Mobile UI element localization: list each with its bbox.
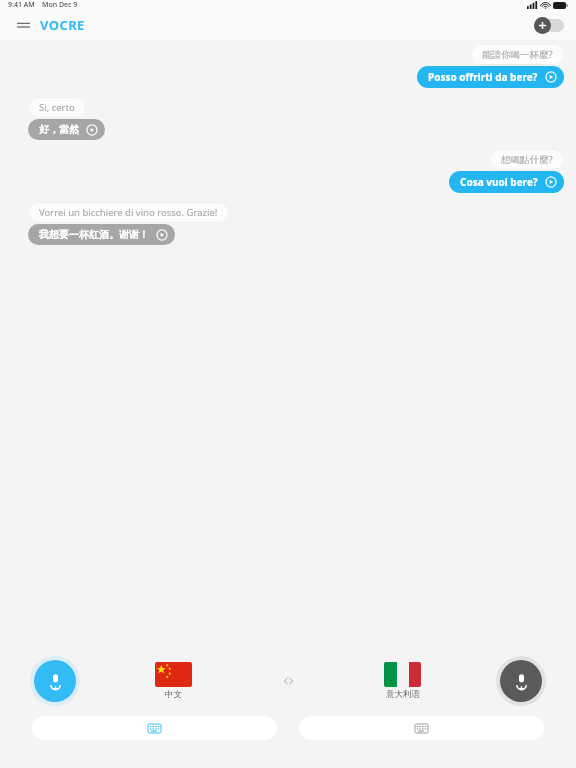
button[interactable]: 意大利语 [382,660,423,702]
button[interactable]: Play [545,71,557,83]
button[interactable]: Play [86,124,98,136]
button[interactable]: Play [156,229,168,241]
button[interactable]: 想喝點什麼? [490,149,564,170]
button[interactable]: Record Italian [495,655,547,707]
staticText: 中文 [165,689,182,700]
button[interactable]: Keyboard input [299,716,544,740]
button[interactable]: Menu [12,14,34,36]
button[interactable]: Swap languages [273,670,303,692]
button[interactable]: Record Chinese [29,655,81,707]
staticText: 意大利语 [386,689,420,700]
button[interactable]: Vorrei un bicchiere di vino rosso. Grazi… [28,202,229,223]
staticText: 好，當然 [39,123,79,136]
button[interactable]: Cosa vuoi bere? [449,171,564,193]
staticText: Vorrei un bicchiere di vino rosso. Grazi… [39,206,218,219]
staticText: Mon Dec 9 [42,0,78,10]
staticText: 想喝點什麼? [501,153,553,166]
staticText: 能請你喝一杯麼? [482,48,553,61]
button[interactable]: 中文 [153,660,194,702]
button[interactable]: 我想要一杯红酒。谢谢！ [28,224,175,245]
button[interactable]: Si, certo [28,97,86,118]
staticText: Si, certo [39,101,75,114]
staticText: Cosa vuoi bere? [460,175,538,189]
button[interactable]: VOCRE [40,16,85,34]
button[interactable]: 好，當然 [28,119,105,140]
button[interactable]: Keyboard input [32,716,277,740]
staticText: 9:41 AM [8,0,35,10]
staticText: Posso offrirti da bere? [428,70,538,84]
button[interactable]: 能請你喝一杯麼? [471,44,564,65]
staticText: 我想要一杯红酒。谢谢！ [39,228,149,241]
button[interactable]: Play [545,176,557,188]
button[interactable]: Posso offrirti da bere? [417,66,564,88]
button[interactable]: Airplane mode toggle [534,17,564,34]
